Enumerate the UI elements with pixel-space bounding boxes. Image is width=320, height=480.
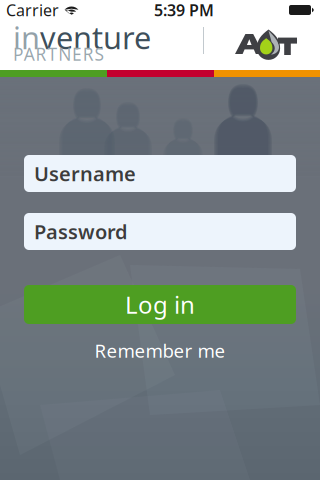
staticText: PARTNERS: [13, 42, 105, 65]
button[interactable]: Username: [24, 155, 296, 192]
staticText: venture: [40, 17, 151, 58]
staticText: Username: [34, 160, 136, 187]
staticText: Remember me: [94, 338, 225, 363]
button[interactable]: Password: [24, 213, 296, 250]
staticText: 5:39 PM: [154, 0, 214, 21]
button[interactable]: Log in: [24, 285, 296, 324]
staticText: Log in: [125, 289, 195, 320]
button[interactable]: Remember me: [94, 338, 225, 363]
staticText: Carrier: [6, 0, 59, 21]
staticText: Password: [34, 218, 128, 245]
staticText: in: [13, 17, 40, 58]
